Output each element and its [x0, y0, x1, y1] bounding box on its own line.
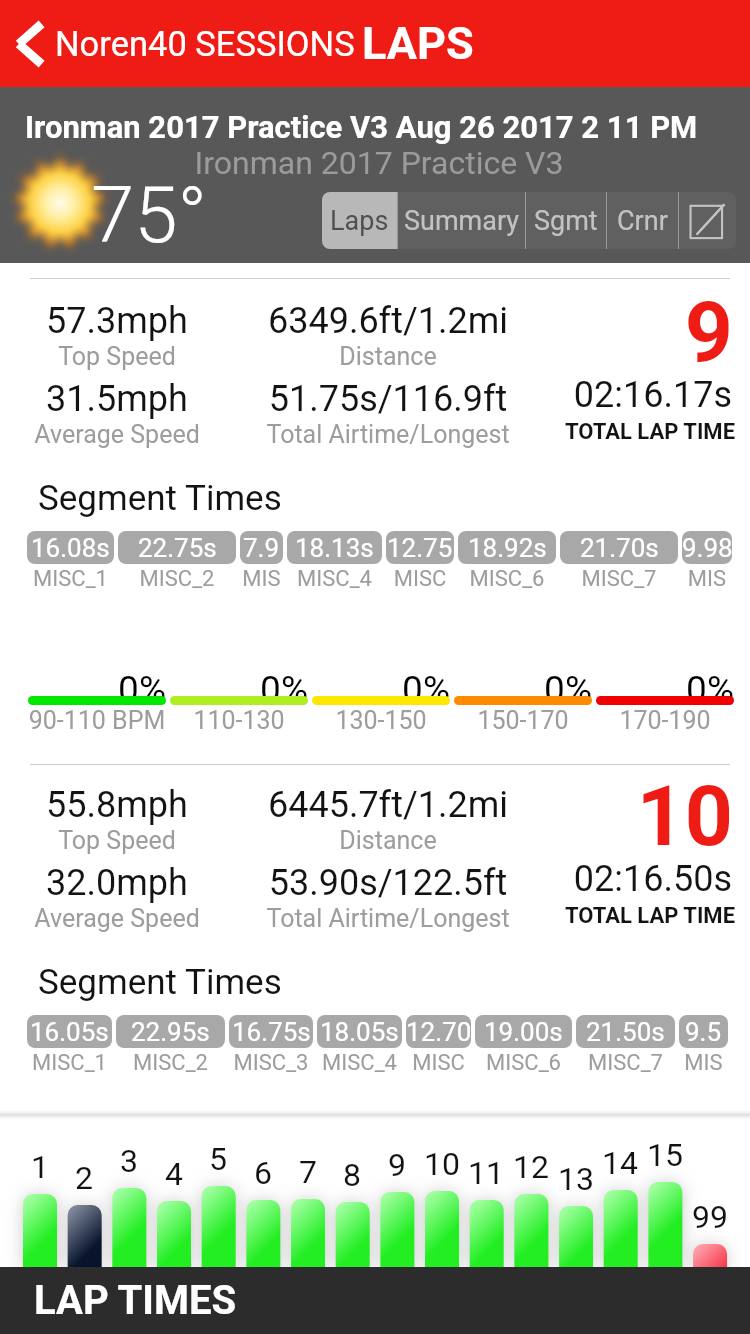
staticText: 19.00s [484, 1017, 563, 1047]
button[interactable]: Lap 5 [178, 1140, 258, 1186]
staticText: 8 [312, 1156, 392, 1194]
staticText: 5 [178, 1140, 258, 1178]
button[interactable]: 9.5 [679, 1015, 728, 1048]
button[interactable]: Lap 12 [491, 1148, 571, 1194]
button[interactable]: Lap 1 [0, 1148, 80, 1194]
staticText: 130-150 [312, 706, 450, 735]
staticText: Crnr [617, 205, 668, 237]
button[interactable]: Lap 10 [402, 1145, 482, 1191]
button[interactable]: Crnr [607, 192, 678, 249]
staticText: MIS [240, 566, 283, 592]
staticText: 0% [312, 668, 450, 711]
staticText: Laps [330, 205, 389, 237]
staticText: 02:16.50s [332, 858, 732, 900]
staticText: Summary [404, 205, 520, 237]
button[interactable]: Lap 4 [134, 1155, 214, 1201]
button[interactable]: 21.70s [560, 531, 678, 564]
staticText: Segment Times [38, 478, 282, 519]
staticText: MISC [386, 566, 454, 592]
staticText: MISC_1 [27, 1050, 112, 1076]
button[interactable]: 21.50s [576, 1015, 675, 1048]
button[interactable]: Lap 6 [223, 1154, 303, 1200]
staticText: 51.75s/116.9ft [188, 378, 588, 420]
staticText: 10 [402, 1145, 482, 1183]
button[interactable]: 16.08s [27, 531, 114, 564]
button[interactable]: 16.75s [229, 1015, 313, 1048]
button[interactable]: 18.92s [458, 531, 556, 564]
staticText: Total Airtime/Longest [188, 420, 588, 449]
staticText: MISC_2 [116, 1050, 225, 1076]
button[interactable]: Lap 13 [536, 1160, 616, 1206]
staticText: Ironman 2017 Practice V3 Aug 26 2017 2 1… [25, 109, 698, 145]
staticText: 32.0mph [0, 862, 317, 904]
staticText: 6349.6ft/1.2mi [188, 300, 588, 342]
staticText: 22.95s [131, 1017, 210, 1047]
staticText: LAPS [362, 17, 474, 70]
staticText: 18.13s [295, 533, 374, 563]
staticText: 02:16.17s [332, 374, 732, 416]
staticText: MISC_1 [27, 566, 114, 592]
staticText: 0% [596, 668, 734, 711]
button[interactable]: Lap 14 [580, 1144, 660, 1190]
button[interactable]: Lap 11 [446, 1154, 526, 1200]
staticText: 9 [333, 283, 733, 381]
staticText: 13 [536, 1160, 616, 1198]
button[interactable]: Edit [679, 192, 736, 249]
button[interactable]: 18.05s [317, 1015, 402, 1048]
staticText: 53.90s/122.5ft [188, 862, 588, 904]
staticText: 18.05s [320, 1017, 399, 1047]
staticText: 10 [333, 767, 733, 865]
button[interactable]: LAP TIMES [0, 1267, 750, 1334]
staticText: Noren40 SESSIONS [55, 24, 355, 64]
staticText: MISC_4 [317, 1050, 402, 1076]
staticText: 2 [44, 1159, 124, 1197]
button[interactable]: Back [2, 10, 56, 78]
button[interactable]: Sgmt [526, 192, 606, 249]
staticText: 75° [91, 170, 208, 261]
staticText: MISC_4 [287, 566, 382, 592]
button[interactable]: 16.05s [27, 1015, 112, 1048]
staticText: LAP TIMES [34, 1277, 237, 1324]
staticText: Distance [188, 342, 588, 371]
button[interactable]: 12.70 [406, 1015, 471, 1048]
button[interactable]: Lap 9 [357, 1146, 437, 1192]
staticText: 0% [28, 668, 166, 711]
staticText: MISC_7 [560, 566, 678, 592]
button[interactable]: Lap 15 [625, 1136, 705, 1182]
staticText: TOTAL LAP TIME [335, 903, 735, 929]
button[interactable]: Lap 2 [44, 1159, 124, 1205]
staticText: 90-110 BPM [28, 706, 166, 735]
staticText: 0% [454, 668, 592, 711]
button[interactable]: Lap 3 [89, 1142, 169, 1188]
button[interactable]: Lap 99 [670, 1198, 750, 1244]
staticText: 9 [357, 1146, 437, 1184]
button[interactable]: 7.9 [240, 531, 283, 564]
button[interactable]: Lap 8 [312, 1156, 392, 1202]
staticText: 99 [670, 1198, 750, 1236]
button[interactable]: Laps [322, 192, 397, 249]
button[interactable]: 19.00s [475, 1015, 572, 1048]
button[interactable]: 18.13s [287, 531, 382, 564]
staticText: Top Speed [0, 826, 317, 855]
staticText: 9.98 [682, 533, 732, 563]
staticText: 57.3mph [0, 300, 317, 342]
staticText: 3 [89, 1142, 169, 1180]
staticText: Total Airtime/Longest [188, 904, 588, 933]
button[interactable]: Lap 7 [268, 1153, 348, 1199]
staticText: 21.70s [580, 533, 659, 563]
button[interactable]: Summary [398, 192, 525, 249]
staticText: 150-170 [454, 706, 592, 735]
staticText: Ironman 2017 Practice V3 [4, 144, 750, 182]
staticText: TOTAL LAP TIME [335, 419, 735, 445]
button[interactable]: 22.95s [116, 1015, 225, 1048]
staticText: MISC [406, 1050, 471, 1076]
button[interactable]: 12.75 [386, 531, 454, 564]
staticText: Top Speed [0, 342, 317, 371]
staticText: MISC_6 [458, 566, 556, 592]
button[interactable]: 9.98 [682, 531, 732, 564]
staticText: Segment Times [38, 962, 282, 1003]
button[interactable]: 22.75s [118, 531, 236, 564]
staticText: MISC_7 [576, 1050, 675, 1076]
staticText: 21.50s [586, 1017, 665, 1047]
staticText: 0% [170, 668, 308, 711]
